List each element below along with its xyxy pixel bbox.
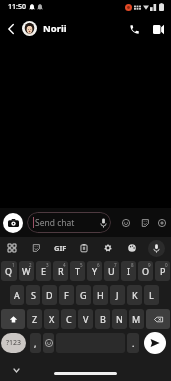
staticText: J xyxy=(116,289,119,301)
button[interactable]: G xyxy=(76,285,91,305)
button[interactable]: K xyxy=(127,285,142,305)
staticText: R xyxy=(58,265,64,277)
button[interactable]: V xyxy=(78,309,93,329)
staticText: , xyxy=(34,337,37,349)
button[interactable]: F xyxy=(59,285,74,305)
staticText: GIF xyxy=(54,243,67,253)
button[interactable]: . xyxy=(127,333,139,353)
button[interactable]: N xyxy=(112,309,127,329)
staticText: 3 xyxy=(46,262,49,268)
staticText: Norii xyxy=(43,22,67,35)
button[interactable]: R xyxy=(53,261,68,281)
button[interactable]: ?123 xyxy=(1,333,26,353)
button[interactable]: More options xyxy=(154,215,169,230)
button[interactable]: C xyxy=(61,309,76,329)
other: Voice message xyxy=(100,218,107,228)
staticText: S xyxy=(31,289,36,301)
staticText: M xyxy=(132,313,141,325)
staticText: X xyxy=(49,313,55,325)
button[interactable]: Send xyxy=(144,332,166,354)
staticText: W xyxy=(22,265,31,277)
button[interactable]: B xyxy=(95,309,110,329)
button[interactable]: Hide keyboard xyxy=(4,359,28,381)
staticText: Z xyxy=(32,313,38,325)
staticText: 6 xyxy=(97,262,100,268)
staticText: 5 xyxy=(80,262,83,268)
button[interactable]: T xyxy=(70,261,85,281)
button[interactable]: Voice input xyxy=(144,237,168,259)
button[interactable]: Theme xyxy=(120,237,144,259)
button[interactable]: Clipboard xyxy=(72,237,96,259)
staticText: B xyxy=(100,313,106,325)
button[interactable]: Backspace xyxy=(146,309,170,329)
staticText: . xyxy=(132,337,135,349)
staticText: V xyxy=(83,313,89,325)
button[interactable]: Z xyxy=(27,309,42,329)
staticText: I xyxy=(127,265,131,277)
staticText: 2 xyxy=(29,262,32,268)
button[interactable]: Call xyxy=(124,19,144,39)
button[interactable]: D xyxy=(42,285,57,305)
staticText: G xyxy=(80,289,87,301)
button[interactable]: E xyxy=(36,261,51,281)
button[interactable]: O xyxy=(138,261,153,281)
button[interactable]: J xyxy=(110,285,125,305)
staticText: P xyxy=(160,265,166,277)
button[interactable]: W xyxy=(19,261,34,281)
button[interactable]: Settings xyxy=(96,237,120,259)
button[interactable]: GIF xyxy=(48,237,72,259)
staticText: ?123 xyxy=(6,338,22,348)
staticText: 4 xyxy=(63,262,66,268)
staticText: 0 xyxy=(165,262,168,268)
staticText: D xyxy=(46,289,53,301)
staticText: Y xyxy=(92,265,98,277)
staticText: O xyxy=(142,265,150,277)
button[interactable]: Y xyxy=(87,261,102,281)
staticText: 11:50 xyxy=(8,2,26,12)
button[interactable]: U xyxy=(104,261,119,281)
staticText: 9 xyxy=(148,262,151,268)
staticText: 7 xyxy=(114,262,117,268)
button[interactable]: M xyxy=(129,309,144,329)
staticText: H xyxy=(97,289,104,301)
staticText: F xyxy=(64,289,69,301)
button[interactable]: P xyxy=(155,261,170,281)
button[interactable]: I xyxy=(121,261,136,281)
staticText: 8 xyxy=(131,262,134,268)
button[interactable]: Video call xyxy=(148,19,168,39)
button[interactable]: Send chat xyxy=(27,212,111,233)
button[interactable]: Emoji xyxy=(118,215,133,230)
staticText: K xyxy=(132,289,138,301)
staticText: Q xyxy=(5,265,13,277)
staticText: E xyxy=(41,265,47,277)
staticText: A xyxy=(14,289,20,301)
staticText: N xyxy=(116,313,123,325)
button[interactable]: Stickers xyxy=(24,237,48,259)
button[interactable]: Shift xyxy=(1,309,25,329)
staticText: L xyxy=(149,289,154,301)
button[interactable]: , xyxy=(30,333,41,353)
button[interactable]: Back xyxy=(0,14,22,43)
staticText: U xyxy=(108,265,115,277)
button[interactable]: S xyxy=(26,285,40,305)
button[interactable]: L xyxy=(144,285,159,305)
button[interactable]: Apps xyxy=(0,237,24,259)
staticText: 1 xyxy=(12,262,15,268)
button[interactable]: H xyxy=(93,285,108,305)
staticText: C xyxy=(66,313,72,325)
button[interactable]: A xyxy=(10,285,24,305)
button[interactable]: Emoji xyxy=(43,333,54,353)
button[interactable]: Camera xyxy=(3,213,23,233)
button[interactable]: Stickers xyxy=(137,215,152,230)
button[interactable]: X xyxy=(44,309,59,329)
staticText: Send chat xyxy=(35,217,75,229)
staticText: T xyxy=(75,265,81,277)
button[interactable]: Q xyxy=(1,261,17,281)
